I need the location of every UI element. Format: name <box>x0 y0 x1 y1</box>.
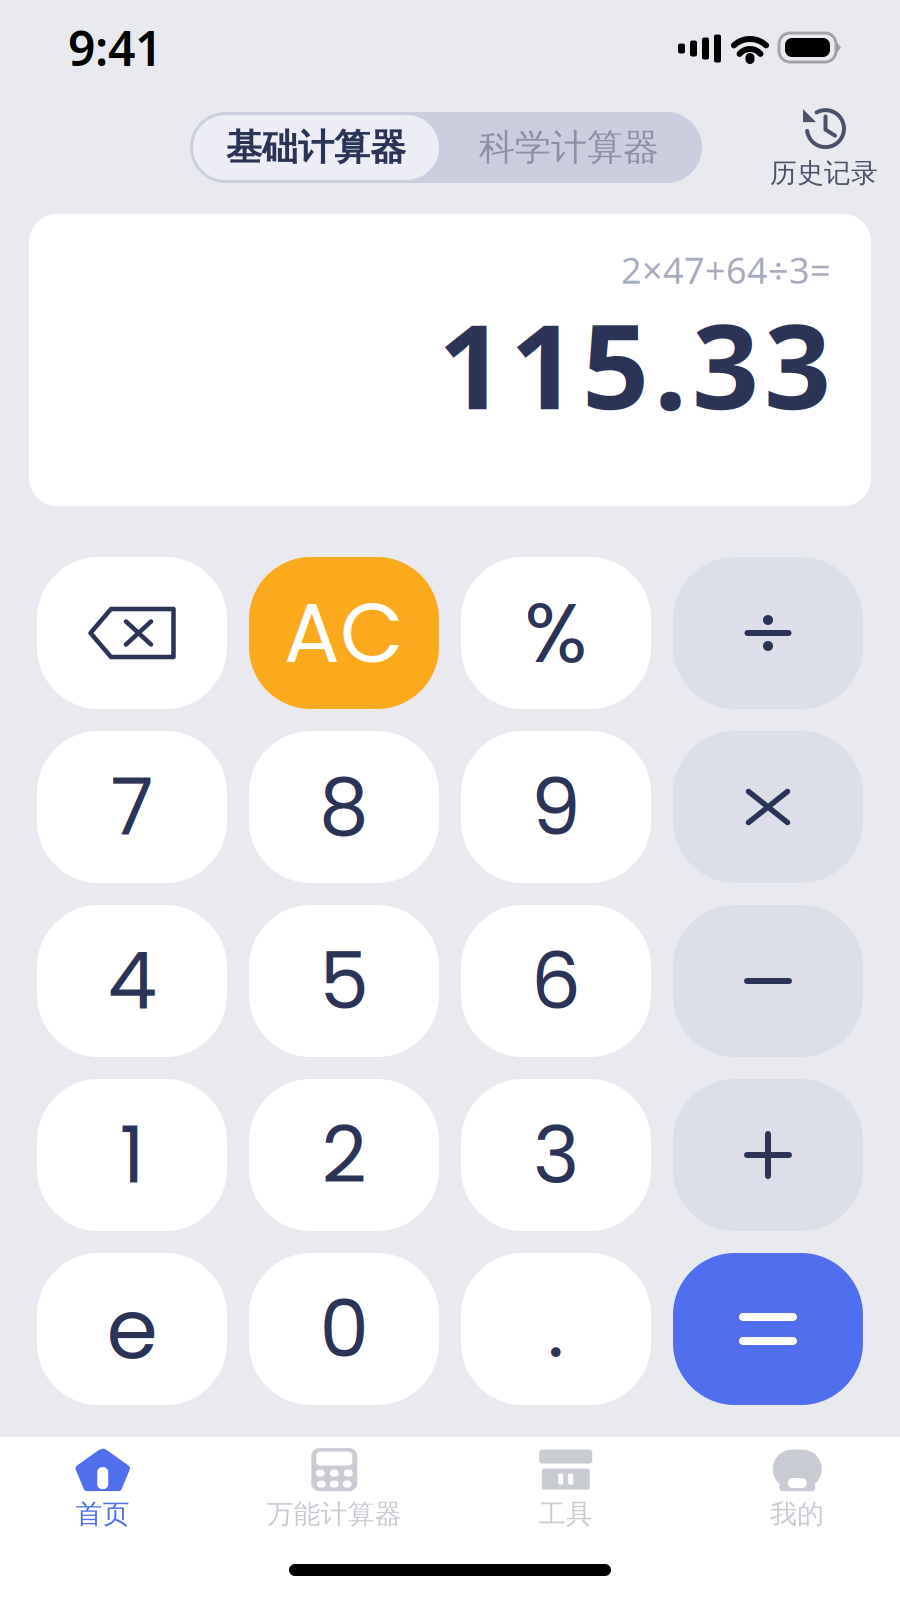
staticText: 4 <box>107 926 156 1036</box>
staticText: 5 <box>319 926 368 1036</box>
button[interactable]: 首页 <box>0 1437 218 1533</box>
staticText: % <box>524 575 587 691</box>
staticText: 7 <box>110 752 153 862</box>
staticText: 万能计算器 <box>267 1498 402 1530</box>
staticText: 0 <box>319 1274 368 1384</box>
button[interactable]: 万能计算器 <box>218 1437 450 1533</box>
button[interactable] <box>461 1253 651 1405</box>
button[interactable]: Multiply <box>673 731 863 883</box>
staticText: 首页 <box>76 1498 130 1530</box>
button[interactable]: Backspace <box>37 557 227 709</box>
button[interactable] <box>249 1253 439 1405</box>
staticText: 6 <box>531 926 581 1036</box>
button[interactable] <box>37 1079 227 1231</box>
staticText: 工具 <box>539 1498 593 1530</box>
staticText: 2 <box>321 1100 366 1210</box>
staticText: . <box>547 1274 564 1384</box>
button[interactable] <box>461 1079 651 1231</box>
button[interactable]: 科学计算器 <box>439 115 699 180</box>
button[interactable]: 历史记录 <box>754 106 894 189</box>
staticText: 基础计算器 <box>226 125 406 170</box>
button[interactable] <box>37 905 227 1057</box>
button[interactable] <box>461 557 651 709</box>
staticText: AC <box>284 575 404 691</box>
button[interactable] <box>461 905 651 1057</box>
staticText: 1 <box>119 1100 144 1210</box>
staticText: 科学计算器 <box>479 125 659 170</box>
staticText: 2×47+64÷3= <box>621 246 831 294</box>
button[interactable] <box>37 1253 227 1405</box>
staticText: 9 <box>531 752 581 862</box>
staticText: e <box>106 1271 157 1387</box>
button[interactable]: 我的 <box>681 1437 900 1533</box>
staticText: 历史记录 <box>770 157 878 189</box>
staticText: 9:41 <box>68 16 162 79</box>
button[interactable]: Divide <box>673 557 863 709</box>
button[interactable]: 工具 <box>450 1437 681 1533</box>
button[interactable]: Plus <box>673 1079 863 1231</box>
button[interactable] <box>249 731 439 883</box>
staticText: 我的 <box>770 1498 824 1530</box>
button[interactable] <box>37 731 227 883</box>
button[interactable]: Equals <box>673 1253 863 1405</box>
button[interactable]: 基础计算器 <box>193 115 439 180</box>
button[interactable] <box>249 557 439 709</box>
staticText: 3 <box>533 1100 579 1210</box>
button[interactable]: Minus <box>673 905 863 1057</box>
button[interactable] <box>461 731 651 883</box>
staticText: 8 <box>319 752 369 862</box>
button[interactable] <box>249 905 439 1057</box>
staticText: 115.33 <box>438 286 831 442</box>
button[interactable] <box>249 1079 439 1231</box>
